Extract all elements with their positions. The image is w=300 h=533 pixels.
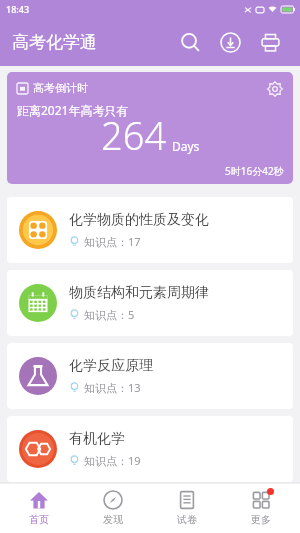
staticText: 高考倒计时 — [33, 81, 88, 95]
staticText: 知识点：5 — [84, 307, 135, 322]
button[interactable]: 化学物质的性质及变化 — [7, 197, 293, 263]
staticText: 18:43 — [6, 3, 30, 15]
button[interactable]: 发现 — [78, 483, 148, 533]
staticText: 化学反应原理 — [69, 357, 153, 375]
staticText: 264 — [101, 109, 167, 161]
button[interactable]: 化学反应原理 — [7, 343, 293, 409]
staticText: 有机化学 — [69, 430, 125, 448]
button[interactable]: Search — [170, 22, 210, 62]
button[interactable]: 有机化学 — [7, 416, 293, 482]
staticText: Days — [172, 138, 200, 154]
staticText: 知识点：17 — [84, 234, 141, 249]
staticText: 知识点：19 — [84, 453, 141, 468]
staticText: 知识点：13 — [84, 380, 141, 395]
button[interactable]: Print — [250, 22, 290, 62]
button[interactable]: 物质结构和元素周期律 — [7, 270, 293, 336]
button[interactable]: 试卷 — [152, 483, 222, 533]
button[interactable]: 高考倒计时 — [7, 72, 293, 184]
button[interactable]: 首页 — [4, 483, 74, 533]
button[interactable]: Download — [210, 22, 250, 62]
button[interactable]: 更多 — [226, 483, 296, 533]
staticText: 距离2021年高考只有 — [17, 102, 129, 118]
staticText: 5时16分42秒 — [225, 164, 284, 178]
staticText: 化学物质的性质及变化 — [69, 211, 209, 229]
staticText: 发现 — [103, 513, 123, 526]
staticText: 试卷 — [177, 513, 197, 526]
button[interactable]: Settings — [265, 79, 285, 99]
staticText: 首页 — [29, 513, 49, 526]
staticText: 高考化学通 — [12, 32, 97, 53]
staticText: 更多 — [251, 513, 271, 526]
staticText: 物质结构和元素周期律 — [69, 284, 209, 302]
